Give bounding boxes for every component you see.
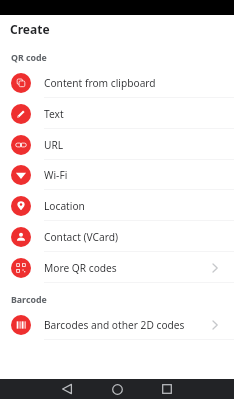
button[interactable]: Contact (VCard) <box>0 221 234 252</box>
staticText: URL <box>44 138 220 152</box>
staticText: Contact (VCard) <box>44 230 220 244</box>
staticText: Barcodes and other 2D codes <box>44 318 210 332</box>
staticText: Content from clipboard <box>44 76 220 90</box>
staticText: More QR codes <box>44 261 210 275</box>
button[interactable]: Text <box>0 98 234 129</box>
button[interactable]: Home <box>107 379 127 399</box>
staticText: Create <box>10 21 50 37</box>
staticText: Wi-Fi <box>44 168 220 182</box>
button[interactable]: URL <box>0 129 234 160</box>
staticText: Barcode <box>11 294 47 306</box>
staticText: Text <box>44 107 220 121</box>
button[interactable]: Location <box>0 190 234 221</box>
button[interactable]: More QR codes <box>0 252 234 283</box>
button[interactable]: Recent apps <box>157 379 177 399</box>
button[interactable]: Back <box>57 379 77 399</box>
staticText: QR code <box>11 52 47 64</box>
button[interactable]: Content from clipboard <box>0 67 234 98</box>
button[interactable]: Wi-Fi <box>0 159 234 190</box>
button[interactable]: Barcodes and other 2D codes <box>0 309 234 340</box>
staticText: Location <box>44 199 220 213</box>
